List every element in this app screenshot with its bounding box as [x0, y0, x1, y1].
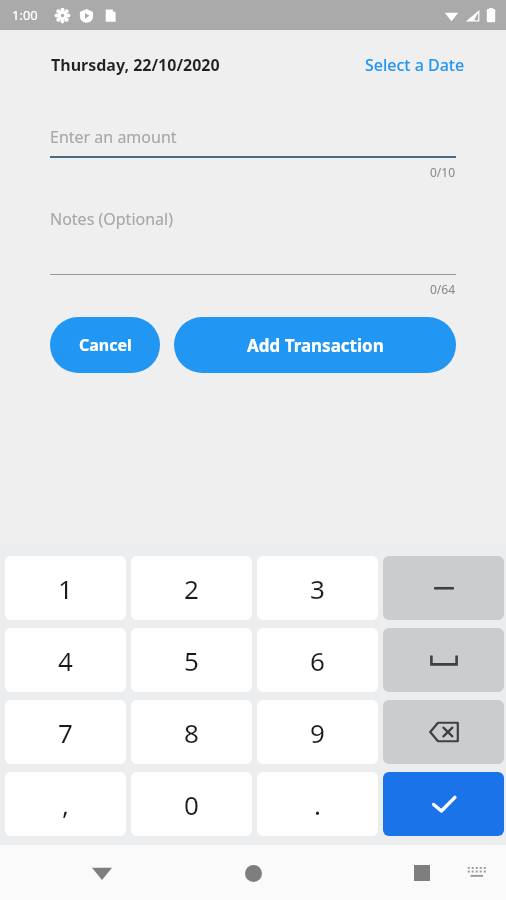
button[interactable]: Add Transaction	[174, 317, 456, 373]
button[interactable]: 9	[257, 700, 378, 764]
button[interactable]: Switch keyboard	[456, 852, 498, 894]
button[interactable]: Hide keyboard	[78, 849, 126, 897]
staticText: 3	[310, 571, 325, 606]
button[interactable]: Home	[229, 849, 277, 897]
button[interactable]: Minus	[383, 556, 504, 620]
button[interactable]: Notes (Optional)	[50, 202, 456, 274]
button[interactable]: Cancel	[50, 317, 160, 373]
button[interactable]: 4	[5, 628, 126, 692]
button[interactable]: Space	[383, 628, 504, 692]
staticText: 0/10	[430, 164, 456, 180]
staticText: Add Transaction	[247, 334, 384, 357]
button[interactable]: 3	[257, 556, 378, 620]
staticText: 1:00	[12, 6, 38, 24]
staticText: .	[314, 787, 321, 822]
staticText: 6	[310, 643, 325, 678]
staticText: Cancel	[79, 334, 132, 356]
staticText: Thursday, 22/10/2020	[51, 54, 220, 76]
staticText: 0/64	[430, 281, 456, 297]
button[interactable]: Recents	[398, 849, 446, 897]
staticText: Notes (Optional)	[50, 208, 173, 230]
staticText: Enter an amount	[50, 126, 177, 148]
button[interactable]: Confirm	[383, 772, 504, 836]
button[interactable]: 5	[131, 628, 252, 692]
staticText: ,	[62, 787, 69, 822]
button[interactable]: Enter an amount	[50, 100, 456, 156]
staticText: 4	[58, 643, 73, 678]
staticText: 8	[184, 715, 199, 750]
staticText: 9	[310, 715, 325, 750]
staticText: 2	[184, 571, 199, 606]
button[interactable]: 8	[131, 700, 252, 764]
button[interactable]: Backspace	[383, 700, 504, 764]
button[interactable]: 1	[5, 556, 126, 620]
staticText: 0	[184, 787, 199, 822]
button[interactable]: 7	[5, 700, 126, 764]
staticText: 1	[58, 571, 73, 606]
button[interactable]: Select a Date	[359, 48, 471, 82]
button[interactable]: 0	[131, 772, 252, 836]
button[interactable]: .	[257, 772, 378, 836]
button[interactable]: ,	[5, 772, 126, 836]
button[interactable]: 6	[257, 628, 378, 692]
staticText: 7	[58, 715, 73, 750]
staticText: Select a Date	[365, 54, 465, 76]
button[interactable]: 2	[131, 556, 252, 620]
staticText: 5	[184, 643, 199, 678]
